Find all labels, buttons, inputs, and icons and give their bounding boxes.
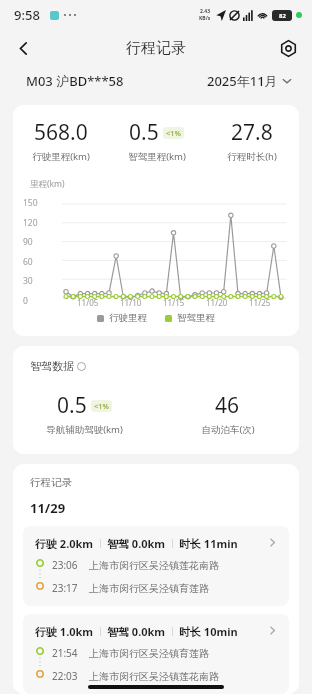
staticText: 30 bbox=[23, 275, 33, 287]
staticText: 11/29 bbox=[30, 499, 66, 517]
staticText: 智驾数据 bbox=[30, 359, 74, 373]
staticText: 智驾里程 bbox=[177, 312, 215, 324]
staticText: 行程记录 bbox=[30, 476, 72, 489]
staticText: 82 bbox=[279, 12, 286, 20]
staticText: 568.0 bbox=[34, 118, 88, 147]
staticText: 行驶里程(km) bbox=[32, 150, 90, 163]
staticText: 11/10 bbox=[120, 297, 142, 308]
staticText: 时长 11min bbox=[179, 536, 238, 551]
staticText: 行驶 2.0km bbox=[35, 536, 94, 551]
staticText: 23:17 bbox=[52, 581, 78, 595]
staticText: 22:03 bbox=[52, 669, 78, 683]
staticText: 智驾里程(km) bbox=[128, 150, 186, 163]
staticText: 11/05 bbox=[77, 297, 99, 308]
staticText: 90 bbox=[23, 236, 33, 248]
button[interactable]: 2025年11月 bbox=[207, 72, 292, 90]
staticText: 上海市闵行区吴泾镇育莲路 bbox=[89, 582, 209, 595]
staticText: 60 bbox=[23, 256, 33, 268]
button[interactable]: 智驾数据 bbox=[30, 359, 86, 373]
staticText: 46 bbox=[215, 391, 240, 420]
button[interactable]: 行驶 1.0km bbox=[23, 614, 289, 694]
staticText: 23:06 bbox=[52, 558, 78, 572]
button[interactable]: 行驶 2.0km bbox=[23, 526, 289, 606]
staticText: 11/25 bbox=[249, 297, 271, 308]
staticText: 2025年11月 bbox=[207, 72, 278, 90]
staticText: 150 bbox=[23, 197, 38, 209]
staticText: 0 bbox=[23, 295, 28, 307]
staticText: 上海市闵行区吴泾镇育莲路 bbox=[89, 647, 209, 660]
staticText: M03 沪BD***58 bbox=[26, 72, 124, 90]
staticText: 行驶里程 bbox=[109, 312, 147, 324]
staticText: KB/s bbox=[199, 15, 211, 22]
staticText: <1% bbox=[166, 128, 181, 138]
staticText: 行驶 1.0km bbox=[35, 624, 94, 639]
staticText: 0.5 bbox=[129, 118, 159, 147]
staticText: 27.8 bbox=[231, 118, 273, 147]
other: Info bbox=[77, 362, 86, 371]
staticText: 11/20 bbox=[206, 297, 228, 308]
staticText: 智驾 0.0km bbox=[107, 624, 166, 639]
staticText: 自动泊车(次) bbox=[201, 423, 255, 436]
staticText: 2.43 bbox=[200, 8, 210, 15]
staticText: 里程(km) bbox=[30, 178, 65, 190]
staticText: 行程时长(h) bbox=[227, 150, 277, 163]
staticText: 上海市闵行区吴泾镇莲花南路 bbox=[89, 559, 219, 572]
staticText: 上海市闵行区吴泾镇莲花南路 bbox=[89, 670, 219, 683]
staticText: 120 bbox=[23, 217, 38, 229]
button[interactable]: Back bbox=[6, 31, 40, 65]
staticText: 行程记录 bbox=[126, 39, 186, 58]
staticText: 9:58 bbox=[14, 6, 40, 24]
staticText: 11/15 bbox=[163, 297, 185, 308]
staticText: 0.5 bbox=[57, 391, 87, 420]
staticText: 时长 10min bbox=[179, 624, 238, 639]
staticText: 智驾 0.0km bbox=[107, 536, 166, 551]
button[interactable]: Settings bbox=[272, 32, 304, 64]
staticText: 21:54 bbox=[52, 646, 78, 660]
staticText: 导航辅助驾驶(km) bbox=[46, 423, 123, 436]
staticText: <1% bbox=[94, 401, 109, 411]
